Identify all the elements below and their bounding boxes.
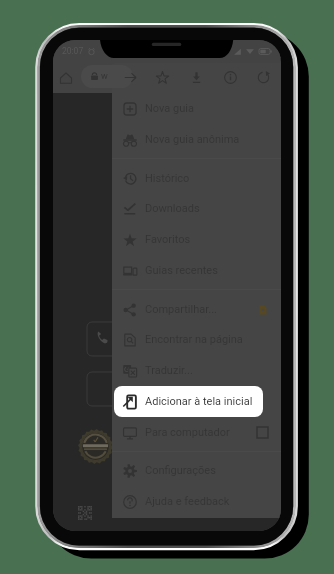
button[interactable]: Reload xyxy=(254,68,273,87)
staticText: Para computador xyxy=(145,426,230,439)
button[interactable]: Home xyxy=(56,68,75,87)
button[interactable]: Bookmark xyxy=(153,68,172,87)
staticText: 20:07 xyxy=(62,46,84,56)
staticText: Nova guia anônima xyxy=(145,133,240,146)
button[interactable]: Encontrar na página xyxy=(112,324,281,355)
staticText: Ajuda e feedback xyxy=(145,495,230,508)
staticText: Downloads xyxy=(145,202,200,215)
staticText: Traduzir... xyxy=(145,364,193,377)
staticText: Configurações xyxy=(145,464,216,477)
staticText: Adicionar à tela inicial xyxy=(145,395,253,408)
staticText: Histórico xyxy=(145,172,190,185)
button[interactable]: Nova guia anônima xyxy=(112,124,281,155)
button[interactable]: Ajuda e feedback xyxy=(112,486,281,517)
button[interactable]: w xyxy=(81,65,133,88)
button[interactable]: Para computador xyxy=(112,417,281,448)
button[interactable]: Adicionar à tela inicial xyxy=(112,386,281,417)
staticText: Favoritos xyxy=(145,233,191,246)
button[interactable]: Download xyxy=(187,68,206,87)
staticText: Encontrar na página xyxy=(145,333,243,346)
staticText: Guias recentes xyxy=(145,264,218,277)
button[interactable]: Page info xyxy=(221,68,240,87)
staticText: w xyxy=(101,71,108,82)
staticText: Nova guia xyxy=(145,102,194,115)
staticText: Compartilhar... xyxy=(145,303,217,316)
button[interactable]: Configurações xyxy=(112,455,281,486)
button[interactable]: Compartilhar... xyxy=(112,294,281,325)
button[interactable]: Forward xyxy=(121,68,140,87)
